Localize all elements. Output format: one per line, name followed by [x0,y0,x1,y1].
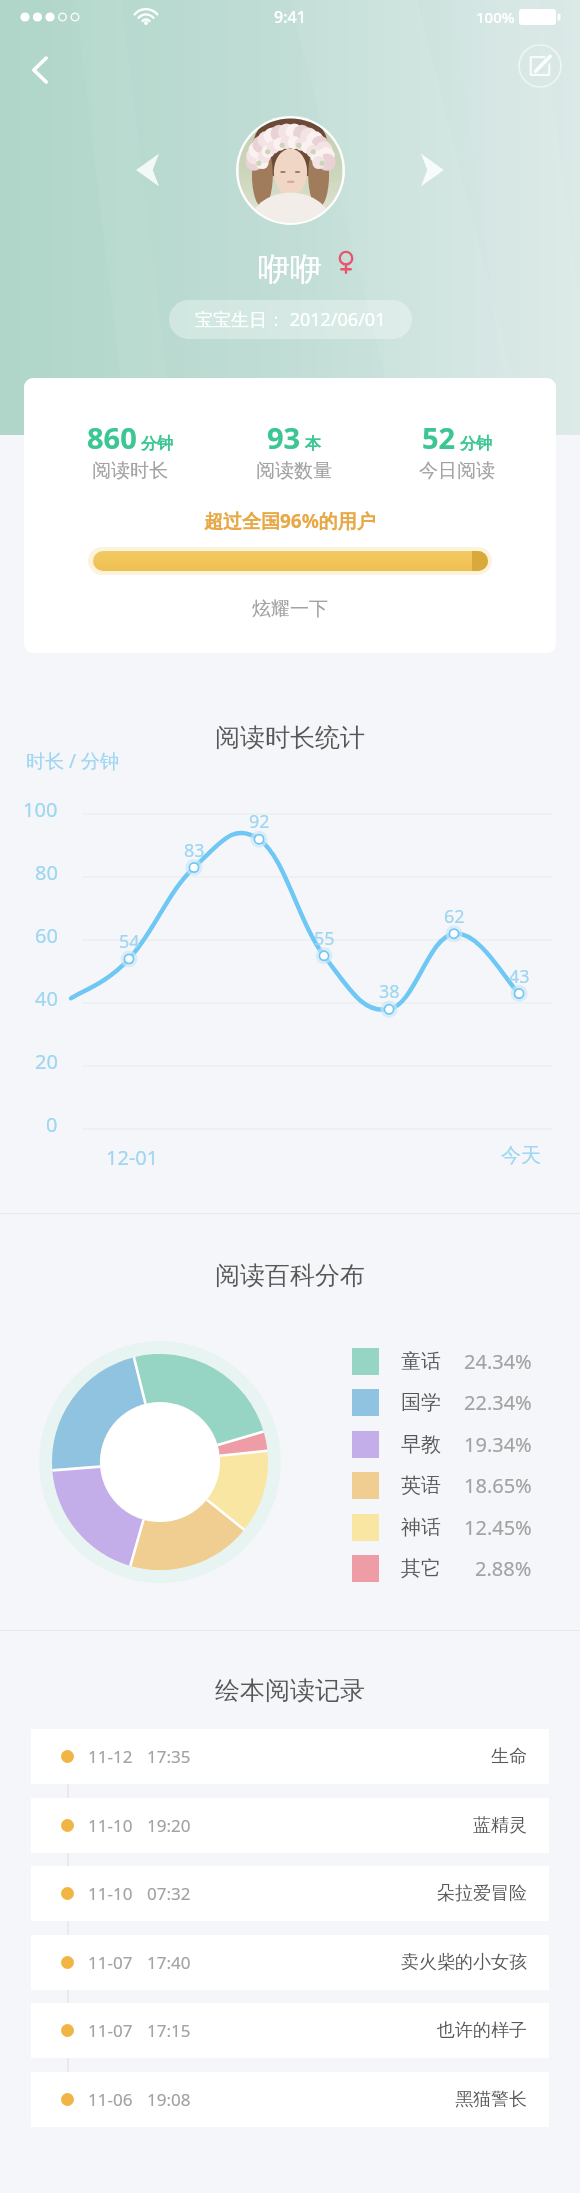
staticText: 分钟 [460,434,492,454]
staticText: 其它 [401,1556,441,1581]
button[interactable]: 童话 [352,1347,532,1375]
staticText: 40 [35,985,58,1012]
staticText: 11-10 [88,1814,133,1837]
staticText: 绘本阅读记录 [215,1675,365,1706]
staticText: 20 [35,1048,58,1075]
staticText: 11-07 [88,1951,133,1974]
button[interactable]: 11-12 [31,1729,549,1784]
staticText: 早教 [401,1432,441,1457]
button[interactable]: Edit profile [518,44,562,88]
staticText: 阅读时长 [92,459,168,483]
button[interactable]: 宝宝生日： 2012/06/01 [169,300,412,339]
staticText: 07:32 [147,1882,191,1905]
staticText: 83 [184,838,205,863]
button[interactable]: 11-07 [31,2003,549,2058]
staticText: 100% [476,7,515,27]
staticText: 超过全国96%的用户 [204,508,376,534]
button[interactable]: 11-06 [31,2072,549,2127]
staticText: 阅读百科分布 [215,1260,365,1291]
button[interactable]: 国学 [352,1388,532,1416]
button[interactable]: 神话 [352,1513,532,1541]
staticText: 55 [314,926,335,951]
staticText: 9:41 [274,6,306,28]
staticText: 17:40 [147,1951,191,1974]
button[interactable]: 其它 [352,1554,532,1582]
staticText: 54 [119,929,140,954]
staticText: 本 [305,434,321,454]
staticText: 18.65% [464,1472,532,1499]
staticText: 阅读数量 [256,459,332,483]
staticText: 0 [46,1111,58,1138]
button[interactable]: 英语 [352,1471,532,1499]
staticText: 11-10 [88,1882,133,1905]
staticText: 62 [444,904,465,929]
staticText: 今天 [501,1143,541,1168]
button[interactable]: Back [14,44,66,96]
staticText: 黑猫警长 [455,2088,527,2111]
staticText: 宝宝生日： 2012/06/01 [195,307,386,332]
staticText: 17:35 [147,1745,191,1768]
staticText: 22.34% [464,1389,532,1416]
staticText: 11-07 [88,2019,133,2042]
staticText: 43 [509,964,530,989]
staticText: 国学 [401,1390,441,1415]
button[interactable]: Next child [408,147,454,193]
button[interactable]: 早教 [352,1430,532,1458]
staticText: 神话 [401,1515,441,1540]
staticText: 朵拉爱冒险 [437,1882,527,1905]
staticText: 阅读时长统计 [215,722,365,753]
staticText: 93 [267,418,301,457]
staticText: 11-12 [88,1745,133,1768]
staticText: 2.88% [475,1555,532,1582]
staticText: 分钟 [141,434,173,454]
button[interactable]: 11-10 [31,1866,549,1921]
staticText: 60 [35,922,58,949]
button[interactable]: 11-10 [31,1798,549,1853]
staticText: 蓝精灵 [473,1814,527,1837]
staticText: 生命 [491,1745,527,1768]
staticText: 80 [35,859,58,886]
staticText: 12.45% [464,1514,532,1541]
staticText: 12-01 [106,1144,159,1171]
staticText: 也许的样子 [437,2019,527,2042]
staticText: 英语 [401,1473,441,1498]
staticText: 时长 / 分钟 [26,748,119,774]
staticText: 860 [87,418,137,457]
staticText: 卖火柴的小女孩 [401,1951,527,1974]
staticText: 今日阅读 [419,459,495,483]
staticText: 19.34% [464,1431,532,1458]
staticText: 咿咿 [258,249,322,289]
staticText: 100 [23,796,58,823]
staticText: 38 [379,979,400,1004]
staticText: 24.34% [464,1348,532,1375]
staticText: 17:15 [147,2019,191,2042]
staticText: 19:20 [147,1814,191,1837]
staticText: 童话 [401,1349,441,1374]
button[interactable]: 11-07 [31,1935,549,1990]
staticText: 炫耀一下 [252,597,328,621]
button[interactable]: Previous child [126,147,172,193]
staticText: 52 [422,418,456,457]
staticText: 19:08 [147,2088,191,2111]
button[interactable]: 炫耀一下 [24,597,556,621]
staticText: 11-06 [88,2088,133,2111]
staticText: 92 [249,809,270,834]
